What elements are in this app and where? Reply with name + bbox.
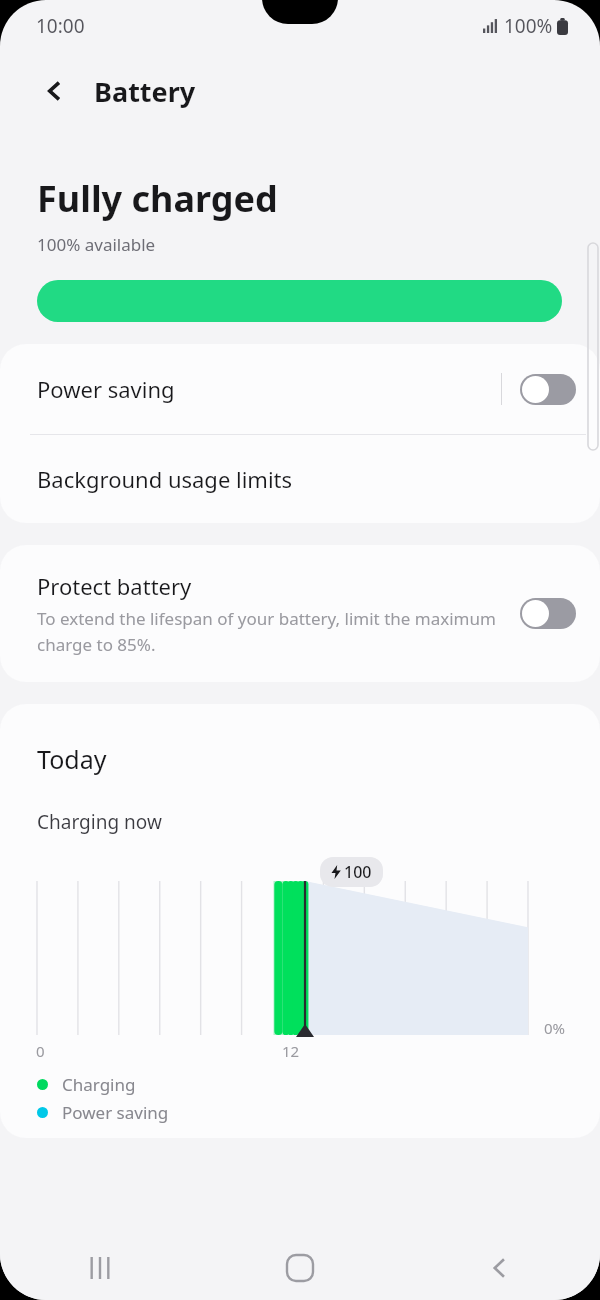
- button[interactable]: Home: [200, 1236, 400, 1300]
- staticText: Charging now: [37, 809, 162, 835]
- staticText: To extend the lifespan of your battery, …: [37, 607, 508, 656]
- staticText: Power saving: [37, 374, 501, 404]
- staticText: Background usage limits: [37, 464, 293, 494]
- staticText: 100: [344, 861, 372, 883]
- staticText: 10:00: [36, 13, 85, 39]
- staticText: 100%: [504, 13, 553, 39]
- button[interactable]: Toggle: [520, 374, 576, 405]
- button[interactable]: Toggle: [520, 598, 576, 629]
- staticText: 0%: [544, 1018, 566, 1038]
- button[interactable]: Back: [34, 70, 76, 112]
- staticText: Today: [37, 742, 107, 776]
- button[interactable]: Recent apps: [0, 1236, 200, 1300]
- staticText: 12: [282, 1041, 300, 1061]
- button[interactable]: Protect battery: [0, 545, 600, 682]
- button[interactable]: Back: [400, 1236, 600, 1300]
- staticText: Battery: [94, 73, 196, 110]
- staticText: Protect battery: [37, 571, 192, 601]
- staticText: 0: [36, 1041, 45, 1061]
- button[interactable]: Power saving: [0, 344, 600, 434]
- staticText: Charging: [62, 1073, 136, 1096]
- staticText: 100% available: [37, 233, 156, 256]
- button[interactable]: Background usage limits: [0, 435, 600, 523]
- staticText: Power saving: [62, 1101, 169, 1124]
- staticText: Fully charged: [37, 174, 278, 223]
